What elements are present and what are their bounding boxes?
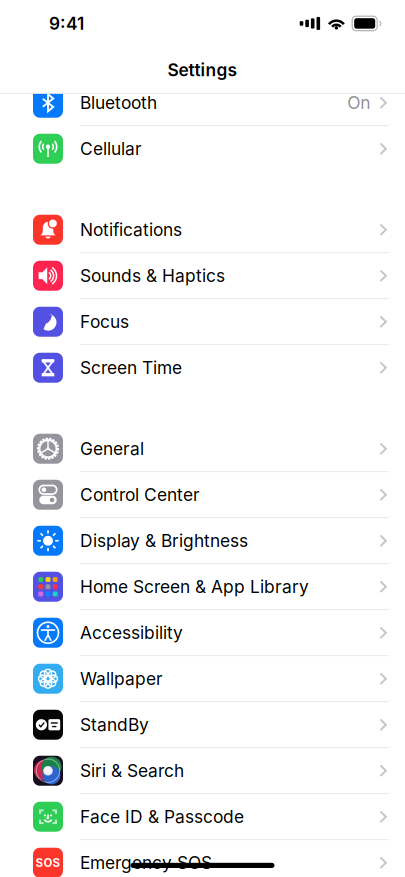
staticText: Sounds & Haptics — [80, 265, 225, 286]
staticText: Emergency SOS — [80, 852, 212, 873]
button[interactable]: Face ID & Passcode — [0, 794, 405, 840]
staticText: Siri & Search — [80, 760, 184, 781]
button[interactable]: Siri & Search — [0, 748, 405, 794]
button[interactable]: Bluetooth — [0, 80, 405, 126]
staticText: Control Center — [80, 484, 200, 505]
staticText: Cellular — [80, 138, 142, 159]
button[interactable]: Accessibility — [0, 610, 405, 656]
staticText: Bluetooth — [80, 92, 157, 113]
staticText: 9:41 — [49, 13, 84, 34]
staticText: Accessibility — [80, 622, 183, 643]
button[interactable]: Home Screen & App Library — [0, 564, 405, 610]
staticText: Screen Time — [80, 357, 182, 378]
staticText: General — [80, 438, 144, 459]
button[interactable]: SOS — [0, 840, 405, 877]
button[interactable]: General — [0, 426, 405, 472]
staticText: On — [347, 92, 370, 113]
button[interactable]: Focus — [0, 299, 405, 345]
staticText: Settings — [167, 59, 237, 80]
staticText: StandBy — [80, 714, 149, 735]
button[interactable]: Sounds & Haptics — [0, 253, 405, 299]
staticText: SOS — [35, 856, 60, 870]
button[interactable]: Cellular — [0, 126, 405, 172]
button[interactable]: StandBy — [0, 702, 405, 748]
button[interactable]: Control Center — [0, 472, 405, 518]
button[interactable]: Display & Brightness — [0, 518, 405, 564]
staticText: Focus — [80, 311, 129, 332]
button[interactable]: Wallpaper — [0, 656, 405, 702]
staticText: Face ID & Passcode — [80, 806, 244, 827]
staticText: Notifications — [80, 219, 182, 240]
staticText: Wallpaper — [80, 668, 163, 689]
button[interactable]: Notifications — [0, 207, 405, 253]
staticText: Home Screen & App Library — [80, 576, 309, 597]
staticText: Display & Brightness — [80, 530, 248, 551]
button[interactable]: Screen Time — [0, 345, 405, 391]
